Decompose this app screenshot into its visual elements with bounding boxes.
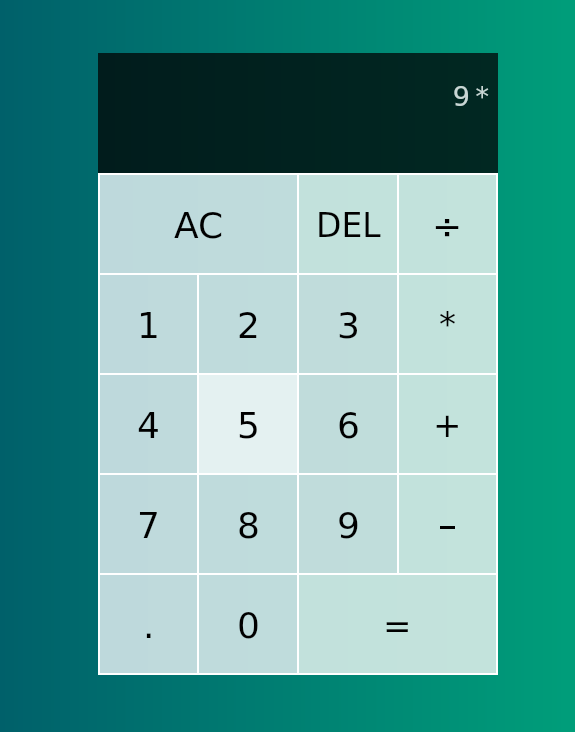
staticText: 2: [237, 305, 260, 347]
button[interactable]: DEL: [299, 175, 397, 273]
staticText: ÷: [432, 206, 463, 248]
button[interactable]: .: [100, 575, 197, 673]
staticText: 1: [137, 305, 160, 347]
staticText: *: [439, 304, 456, 344]
button[interactable]: 2: [199, 275, 297, 373]
button[interactable]: 3: [299, 275, 397, 373]
staticText: AC: [174, 205, 224, 247]
button[interactable]: 6: [299, 375, 397, 473]
staticText: 9: [337, 505, 360, 547]
staticText: 4: [137, 405, 160, 447]
button[interactable]: AC: [100, 175, 297, 273]
button[interactable]: 7: [100, 475, 197, 573]
button[interactable]: 1: [100, 275, 197, 373]
button[interactable]: 8: [199, 475, 297, 573]
button[interactable]: Multiply: [399, 275, 496, 373]
staticText: .: [143, 605, 155, 647]
staticText: *: [475, 81, 489, 112]
staticText: +: [433, 405, 462, 445]
button[interactable]: 0: [199, 575, 297, 673]
staticText: 8: [237, 505, 260, 547]
button[interactable]: 5: [199, 375, 297, 473]
button[interactable]: Equals: [299, 575, 496, 673]
staticText: =: [383, 606, 412, 646]
staticText: 3: [337, 305, 360, 347]
staticText: 7: [137, 505, 160, 547]
button[interactable]: Subtract: [399, 475, 496, 573]
button[interactable]: 4: [100, 375, 197, 473]
button[interactable]: Divide: [399, 175, 496, 273]
staticText: 0: [237, 605, 260, 647]
staticText: DEL: [316, 206, 381, 244]
staticText: 5: [237, 405, 260, 447]
button[interactable]: 9: [299, 475, 397, 573]
staticText: 9: [452, 81, 470, 112]
staticText: 6: [337, 405, 360, 447]
button[interactable]: Add: [399, 375, 496, 473]
